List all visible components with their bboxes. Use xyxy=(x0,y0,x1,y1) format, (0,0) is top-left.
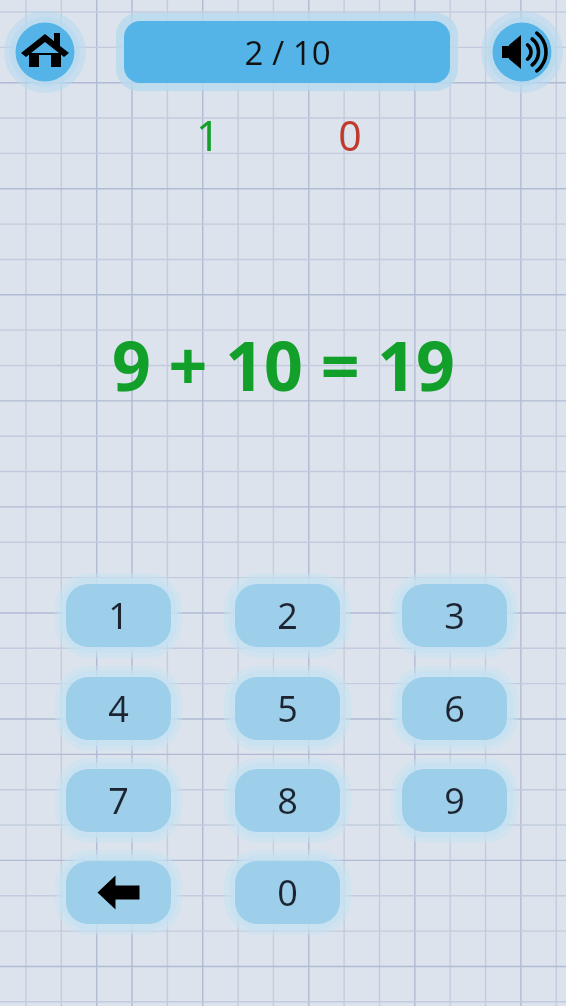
staticText: 4 xyxy=(108,684,129,733)
staticText: 5 xyxy=(277,684,298,733)
staticText: 0 xyxy=(277,868,298,917)
staticText: 8 xyxy=(277,776,298,825)
staticText: 3 xyxy=(444,591,465,640)
button[interactable]: 4 xyxy=(55,666,182,751)
button[interactable]: 5 xyxy=(224,666,351,751)
button[interactable]: Home xyxy=(3,10,87,94)
staticText: 9 xyxy=(444,776,465,825)
button[interactable]: 1 xyxy=(55,573,182,658)
staticText: 9 + 10 = 19 xyxy=(112,318,455,402)
staticText: 6 xyxy=(444,684,465,733)
staticText: 1 xyxy=(196,107,220,163)
button[interactable]: 3 xyxy=(391,573,518,658)
button[interactable]: Backspace xyxy=(55,850,182,935)
button[interactable]: 9 xyxy=(391,758,518,843)
button[interactable]: 0 xyxy=(224,850,351,935)
button[interactable]: 2 / 10 xyxy=(116,13,458,91)
staticText: 1 xyxy=(108,591,129,640)
button[interactable]: 6 xyxy=(391,666,518,751)
staticText: 7 xyxy=(108,776,129,825)
staticText: 2 xyxy=(277,591,298,640)
button[interactable]: Sound xyxy=(480,10,564,94)
staticText: 0 xyxy=(338,107,362,163)
button[interactable]: 8 xyxy=(224,758,351,843)
staticText: 2 / 10 xyxy=(244,30,331,75)
button[interactable]: 2 xyxy=(224,573,351,658)
button[interactable]: 7 xyxy=(55,758,182,843)
